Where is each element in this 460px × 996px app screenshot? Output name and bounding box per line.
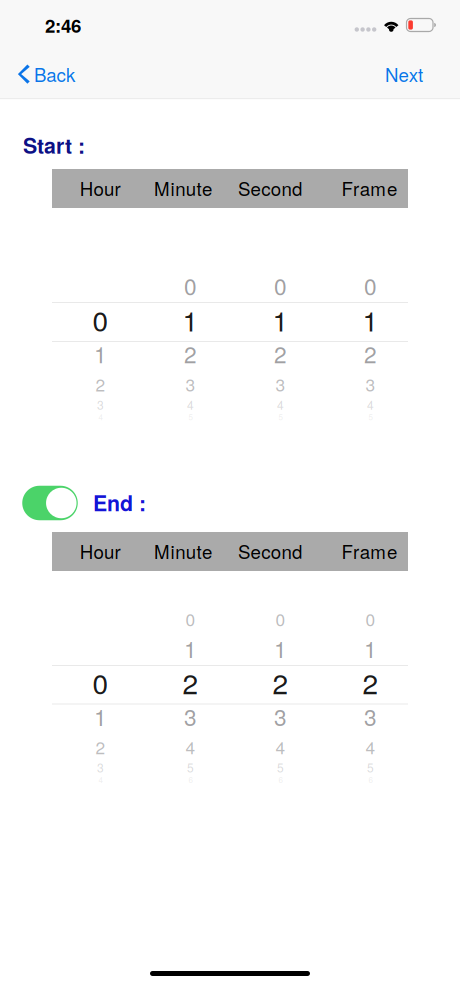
staticText: 5 xyxy=(367,759,374,776)
staticText: 0 xyxy=(365,606,375,631)
staticText: 2 xyxy=(272,662,288,702)
staticText: 2 xyxy=(95,734,105,759)
staticText: 2 xyxy=(184,337,197,370)
staticText: Minute xyxy=(154,538,212,564)
staticText: 3 xyxy=(365,372,375,396)
staticText: 1 xyxy=(274,632,287,664)
staticText: 0 xyxy=(184,269,197,302)
staticText: 0 xyxy=(92,299,108,339)
staticText: 4 xyxy=(275,734,285,759)
staticText: 4 xyxy=(365,734,375,759)
staticText: 1 xyxy=(94,700,107,732)
staticText: 4 xyxy=(98,411,102,423)
staticText: 0 xyxy=(364,269,377,302)
staticText: Next xyxy=(385,61,423,87)
staticText: 6 xyxy=(278,774,282,785)
staticText: 4 xyxy=(187,396,194,413)
staticText: 3 xyxy=(184,700,197,732)
button[interactable]: Next xyxy=(346,55,446,93)
staticText: Second xyxy=(238,175,302,201)
staticText: 4 xyxy=(367,396,374,413)
staticText: 1 xyxy=(184,632,197,664)
staticText: 1 xyxy=(94,337,107,370)
staticText: 6 xyxy=(368,774,372,785)
staticText: 0 xyxy=(185,606,195,631)
staticText: 2 xyxy=(95,372,105,396)
staticText: Back xyxy=(34,61,75,87)
staticText: Second xyxy=(238,538,302,564)
staticText: 1 xyxy=(182,299,198,339)
staticText: 2 xyxy=(362,662,378,702)
staticText: 0 xyxy=(274,269,287,302)
staticText: 5 xyxy=(368,411,372,423)
staticText: 4 xyxy=(185,734,195,759)
staticText: 2 xyxy=(364,337,377,370)
staticText: 0 xyxy=(92,662,108,702)
staticText: 4 xyxy=(98,774,102,785)
staticText: 1 xyxy=(364,632,377,664)
staticText: 3 xyxy=(185,372,195,396)
staticText: Frame xyxy=(341,538,397,564)
staticText: 2:46 xyxy=(45,12,81,38)
staticText: Frame xyxy=(341,175,397,201)
staticText: 1 xyxy=(362,299,378,339)
staticText: 5 xyxy=(277,759,284,776)
staticText: Start : xyxy=(23,130,85,160)
staticText: Hour xyxy=(80,175,121,201)
staticText: End : xyxy=(93,487,146,518)
staticText: 5 xyxy=(278,411,282,423)
staticText: 5 xyxy=(188,411,192,423)
staticText: 3 xyxy=(274,700,287,732)
staticText: 2 xyxy=(274,337,287,370)
staticText: 3 xyxy=(275,372,285,396)
staticText: 6 xyxy=(188,774,192,785)
staticText: 4 xyxy=(277,396,284,413)
button[interactable]: Back xyxy=(8,55,118,93)
staticText: 3 xyxy=(364,700,377,732)
staticText: 5 xyxy=(187,759,194,776)
staticText: 0 xyxy=(275,606,285,631)
button[interactable]: Enable end time xyxy=(22,486,78,520)
staticText: Hour xyxy=(80,538,121,564)
staticText: 2 xyxy=(182,662,198,702)
staticText: 1 xyxy=(272,299,288,339)
staticText: 3 xyxy=(97,759,104,776)
staticText: Minute xyxy=(154,175,212,201)
staticText: 3 xyxy=(97,396,104,413)
